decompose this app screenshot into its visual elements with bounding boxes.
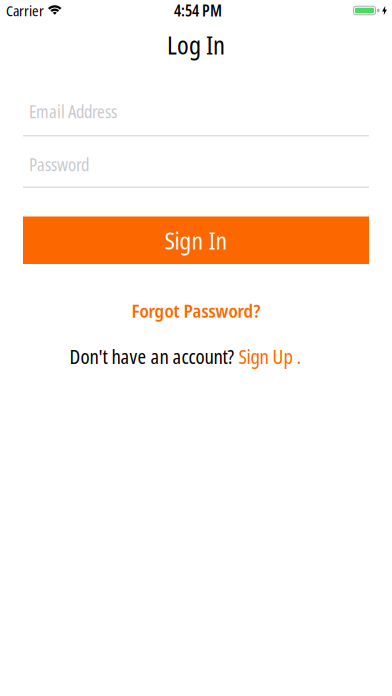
staticText: Forgot Password? bbox=[131, 298, 260, 323]
secureTextField[interactable]: Password bbox=[23, 149, 369, 179]
button[interactable]: Forgot Password? bbox=[131, 300, 260, 320]
staticText: Carrier bbox=[6, 0, 44, 20]
staticText: Sign In bbox=[164, 224, 227, 257]
staticText: Log In bbox=[167, 28, 225, 62]
staticText: Email Address bbox=[29, 100, 117, 123]
staticText: Password bbox=[29, 153, 89, 176]
button[interactable]: Sign Up . bbox=[238, 343, 301, 370]
button[interactable]: Sign In bbox=[23, 216, 369, 264]
staticText: Sign Up . bbox=[238, 343, 301, 370]
staticText: Email Address bbox=[23, 96, 174, 126]
textField[interactable]: Email Address bbox=[23, 96, 369, 126]
staticText: Don't have an account? bbox=[69, 343, 238, 370]
staticText: 4:54 PM bbox=[174, 0, 222, 21]
staticText: Password bbox=[23, 149, 127, 179]
